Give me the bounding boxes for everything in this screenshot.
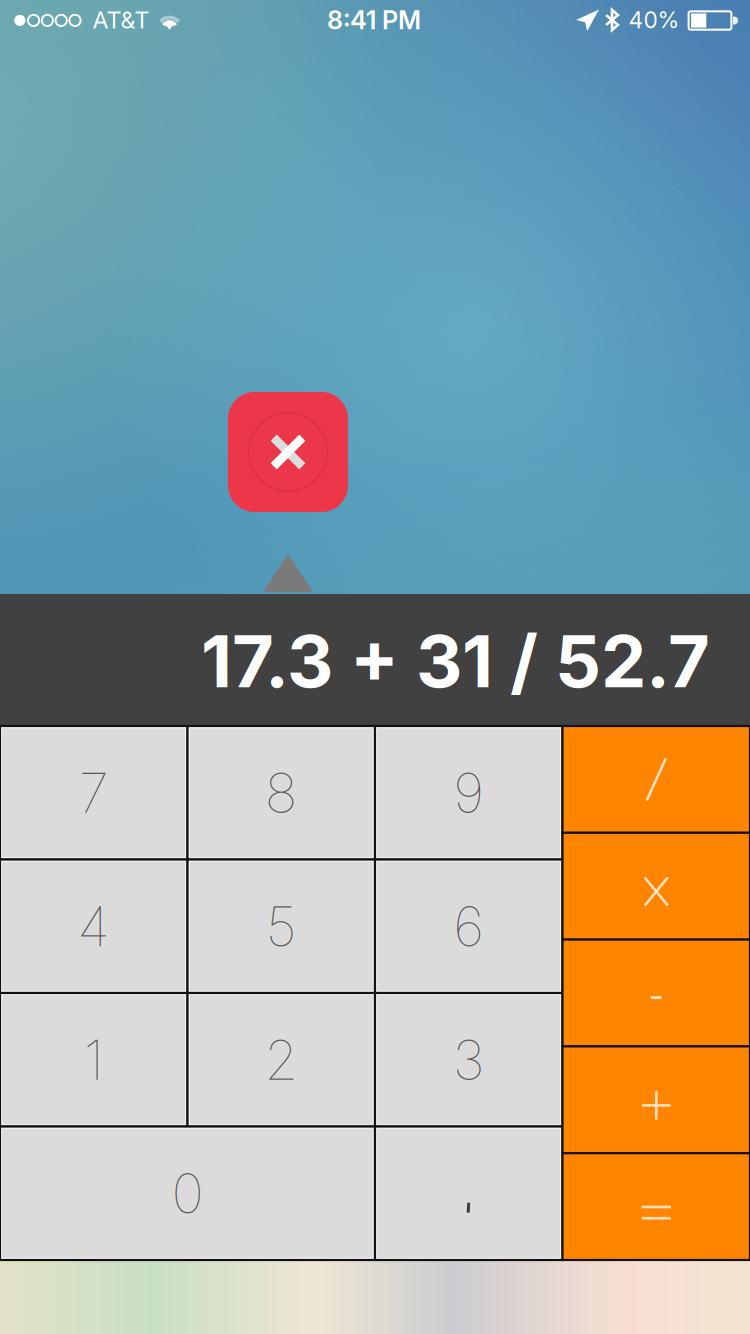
staticText: 6 — [453, 893, 484, 959]
staticText: 40% — [628, 6, 679, 34]
button[interactable]: Close calculator — [228, 392, 348, 512]
staticText: 7 — [79, 760, 109, 826]
staticText: 9 — [453, 760, 484, 826]
staticText: 17.3 + 31 / 52.7 — [201, 617, 710, 704]
staticText: AT&T — [92, 6, 149, 34]
button[interactable]: Add — [562, 1046, 750, 1153]
staticText: 5 — [266, 893, 297, 959]
button[interactable]: Divide — [562, 726, 750, 833]
button[interactable]: 1 — [0, 993, 187, 1126]
staticText: 3 — [453, 1027, 485, 1093]
button[interactable]: 3 — [375, 993, 562, 1126]
button[interactable]: 4 — [0, 859, 187, 993]
button[interactable]: Multiply — [562, 833, 750, 940]
button[interactable]: Subtract — [562, 940, 750, 1046]
staticText: 4 — [77, 893, 110, 959]
staticText: 1 — [84, 1027, 104, 1093]
button[interactable]: 6 — [375, 859, 562, 993]
button[interactable]: Equals — [562, 1153, 750, 1260]
button[interactable]: 7 — [0, 726, 187, 859]
staticText: 8:41 PM — [327, 5, 421, 35]
staticText: 2 — [264, 1027, 298, 1093]
button[interactable]: 0 — [0, 1126, 375, 1260]
button[interactable]: 5 — [187, 859, 375, 993]
button[interactable]: 8 — [187, 726, 375, 859]
staticText: 0 — [171, 1160, 203, 1226]
button[interactable]: 2 — [187, 993, 375, 1126]
staticText: 8 — [265, 760, 298, 826]
button[interactable]: Decimal separator — [375, 1126, 562, 1260]
button[interactable]: 9 — [375, 726, 562, 859]
